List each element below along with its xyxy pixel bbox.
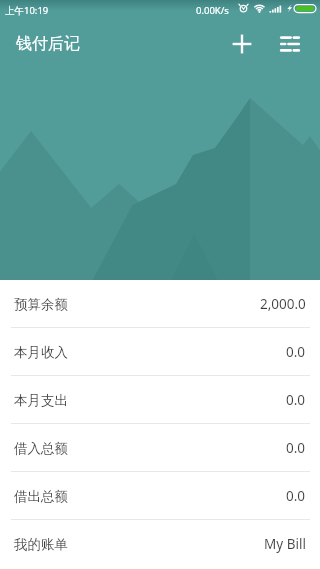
staticText: 本月收入: [14, 344, 68, 361]
staticText: 0.0: [286, 391, 306, 409]
staticText: 本月支出: [14, 392, 68, 409]
staticText: 借入总额: [14, 440, 68, 457]
button[interactable]: Filter: [266, 20, 314, 68]
staticText: 预算余额: [14, 296, 68, 313]
button[interactable]: 预算余额: [0, 280, 320, 328]
staticText: 0.0: [286, 487, 306, 505]
button[interactable]: 本月收入: [0, 328, 320, 376]
staticText: 上午10:19: [5, 4, 49, 17]
staticText: 0.0: [286, 439, 306, 457]
staticText: 0.00K/s: [196, 4, 229, 17]
staticText: 借出总额: [14, 488, 68, 505]
button[interactable]: 借入总额: [0, 424, 320, 472]
staticText: 我的账单: [14, 536, 68, 553]
button[interactable]: Add record: [218, 20, 266, 68]
staticText: 0.0: [286, 343, 306, 361]
staticText: 钱付后记: [16, 34, 80, 54]
button[interactable]: 我的账单: [0, 520, 320, 568]
button[interactable]: 借出总额: [0, 472, 320, 520]
staticText: My Bill: [264, 535, 306, 553]
staticText: 2,000.0: [260, 295, 306, 313]
button[interactable]: 本月支出: [0, 376, 320, 424]
